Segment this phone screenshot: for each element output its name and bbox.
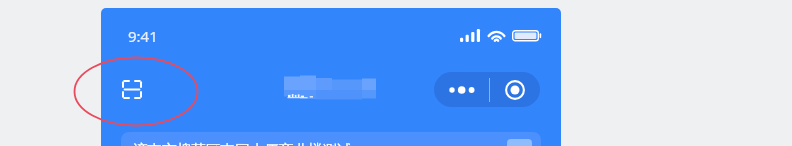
button[interactable]: More options — [434, 72, 489, 107]
staticText: 济南市槐荫区南国大厦商业楼测试 — [133, 141, 352, 146]
button[interactable]: 济南市槐荫区南国大厦商业楼测试 — [121, 132, 541, 146]
staticText: 9:41 — [128, 26, 158, 46]
button[interactable]: Switch — [507, 139, 532, 146]
button[interactable]: Scan — [111, 68, 153, 110]
button[interactable]: Mini program — [490, 72, 540, 107]
